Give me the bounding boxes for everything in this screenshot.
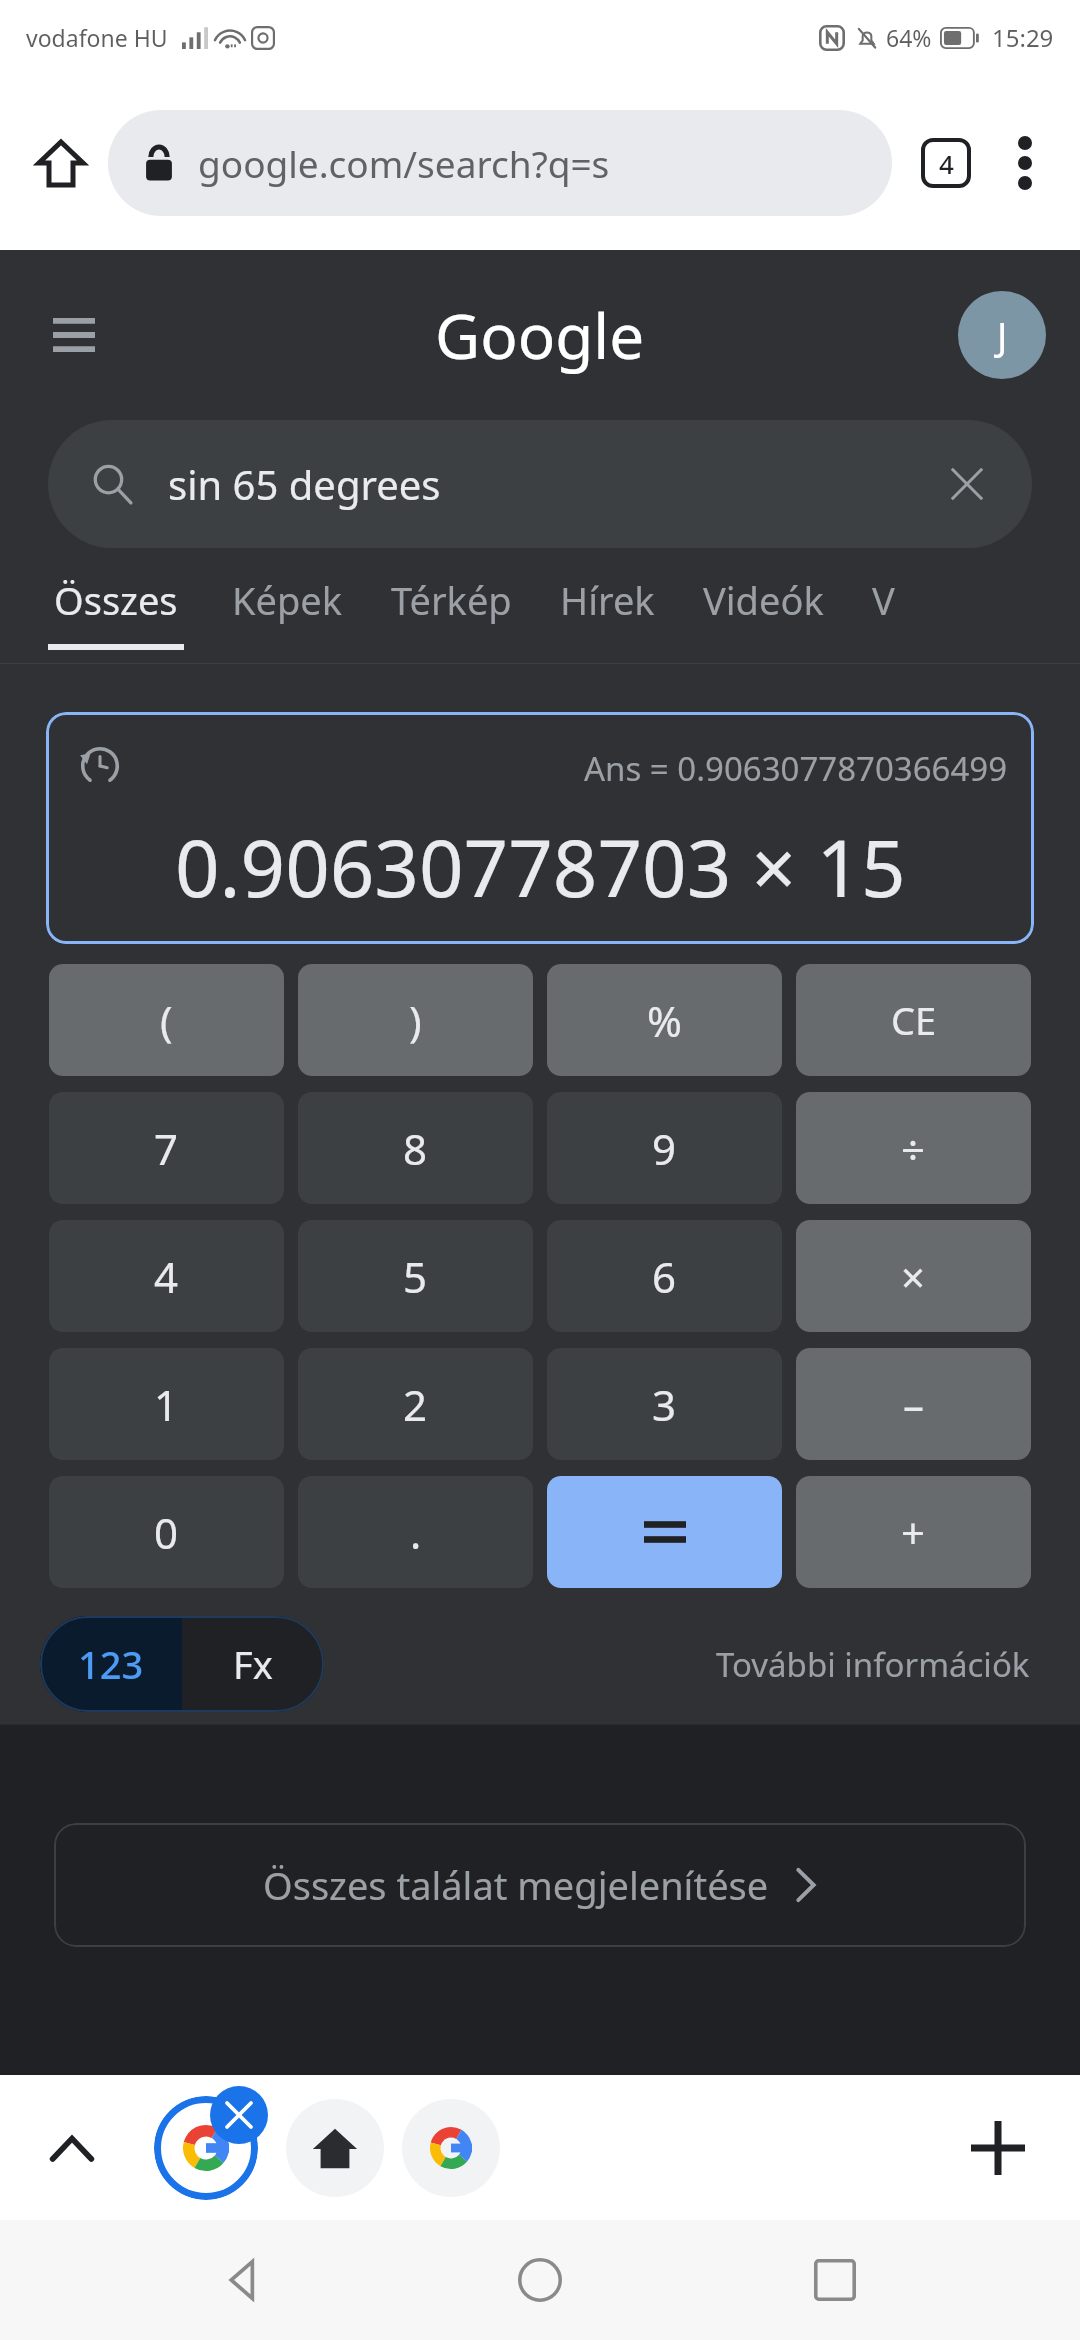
button[interactable]: Expand	[36, 2112, 108, 2184]
button[interactable]: (	[49, 964, 284, 1076]
button[interactable]	[547, 1476, 782, 1588]
button[interactable]: ÷	[796, 1092, 1031, 1204]
staticText: 64%	[886, 22, 932, 53]
button[interactable]: Összes	[48, 548, 232, 650]
button[interactable]: google.com/search?q=s	[108, 110, 892, 216]
staticText: További információk	[716, 1642, 1030, 1687]
button[interactable]: 0	[49, 1476, 284, 1588]
button[interactable]: 4	[49, 1220, 284, 1332]
staticText: ×	[901, 1248, 926, 1305]
button[interactable]: )	[298, 964, 533, 1076]
staticText: J	[997, 309, 1008, 361]
button[interactable]: ×	[796, 1220, 1031, 1332]
staticText: Összes találat megjelenítése	[263, 1859, 769, 1911]
staticText: Videók	[703, 574, 824, 626]
button[interactable]: .	[298, 1476, 533, 1588]
button[interactable]: 2	[298, 1348, 533, 1460]
button[interactable]: Összes találat megjelenítése	[54, 1823, 1026, 1947]
staticText: Összes	[54, 574, 178, 626]
button[interactable]: 5	[298, 1220, 533, 1332]
button[interactable]: New tab	[956, 2106, 1040, 2190]
staticText: 15:29	[992, 21, 1054, 54]
button[interactable]: Home tab	[286, 2099, 384, 2197]
button[interactable]: 3	[547, 1348, 782, 1460]
button[interactable]: Current tab	[144, 2086, 268, 2210]
button[interactable]: 123	[40, 1616, 182, 1712]
button[interactable]: Videók	[703, 548, 872, 644]
staticText: 8	[403, 1120, 428, 1177]
button[interactable]: Térkép	[391, 548, 560, 644]
staticText: 2	[403, 1376, 428, 1433]
button[interactable]: Képek	[232, 548, 391, 644]
staticText: 0	[154, 1504, 179, 1561]
staticText: Google	[435, 293, 645, 377]
button[interactable]: More options	[990, 128, 1060, 198]
button[interactable]: További információk	[710, 1636, 1036, 1693]
button[interactable]: Menu	[36, 297, 112, 373]
button[interactable]: Google account	[958, 291, 1046, 379]
button[interactable]: CE	[796, 964, 1031, 1076]
button[interactable]: Home	[490, 2230, 590, 2330]
staticText: 3	[652, 1376, 677, 1433]
button[interactable]: V	[872, 548, 895, 644]
staticText: 1	[154, 1376, 179, 1433]
staticText: Térkép	[391, 574, 512, 626]
staticText: V	[872, 574, 895, 626]
button[interactable]: 1	[49, 1348, 284, 1460]
button[interactable]: sin 65 degrees	[48, 420, 1032, 548]
button[interactable]: 6	[547, 1220, 782, 1332]
staticText: 0.90630778703 × 15	[175, 814, 906, 920]
button[interactable]: Fx	[182, 1616, 324, 1712]
button[interactable]: –	[796, 1348, 1031, 1460]
staticText: 4	[154, 1248, 179, 1305]
button[interactable]: Recents	[785, 2230, 885, 2330]
button[interactable]: Hírek	[560, 548, 703, 644]
button[interactable]: History	[72, 738, 128, 794]
button[interactable]: Google tab	[402, 2099, 500, 2197]
button[interactable]: Home	[22, 124, 100, 202]
staticText: (	[160, 992, 173, 1049]
staticText: )	[409, 992, 422, 1049]
staticText: 9	[652, 1120, 677, 1177]
staticText: ÷	[901, 1120, 926, 1177]
button[interactable]: Back	[195, 2230, 295, 2330]
staticText: 5	[403, 1248, 428, 1305]
staticText: 123	[78, 1638, 144, 1690]
staticText: sin 65 degrees	[168, 457, 926, 511]
button[interactable]: %	[547, 964, 782, 1076]
button[interactable]: Clear	[942, 459, 992, 509]
staticText: .	[410, 1504, 422, 1561]
button[interactable]: 8	[298, 1092, 533, 1204]
staticText: Ans = 0.9063077870366499	[584, 746, 1008, 791]
staticText: google.com/search?q=s	[198, 138, 610, 188]
staticText: –	[903, 1376, 925, 1433]
button[interactable]: 9	[547, 1092, 782, 1204]
staticText: CE	[891, 994, 937, 1046]
staticText: Fx	[233, 1638, 273, 1690]
staticText: Képek	[232, 574, 343, 626]
staticText: +	[901, 1504, 926, 1561]
staticText: 6	[652, 1248, 677, 1305]
button[interactable]: +	[796, 1476, 1031, 1588]
button[interactable]: Tabs: 4	[908, 125, 984, 201]
staticText: Hírek	[560, 574, 655, 626]
staticText: vodafone HU	[26, 22, 168, 53]
button[interactable]: 7	[49, 1092, 284, 1204]
staticText: 4	[939, 146, 954, 181]
staticText: 7	[154, 1120, 179, 1177]
staticText: %	[647, 992, 682, 1049]
